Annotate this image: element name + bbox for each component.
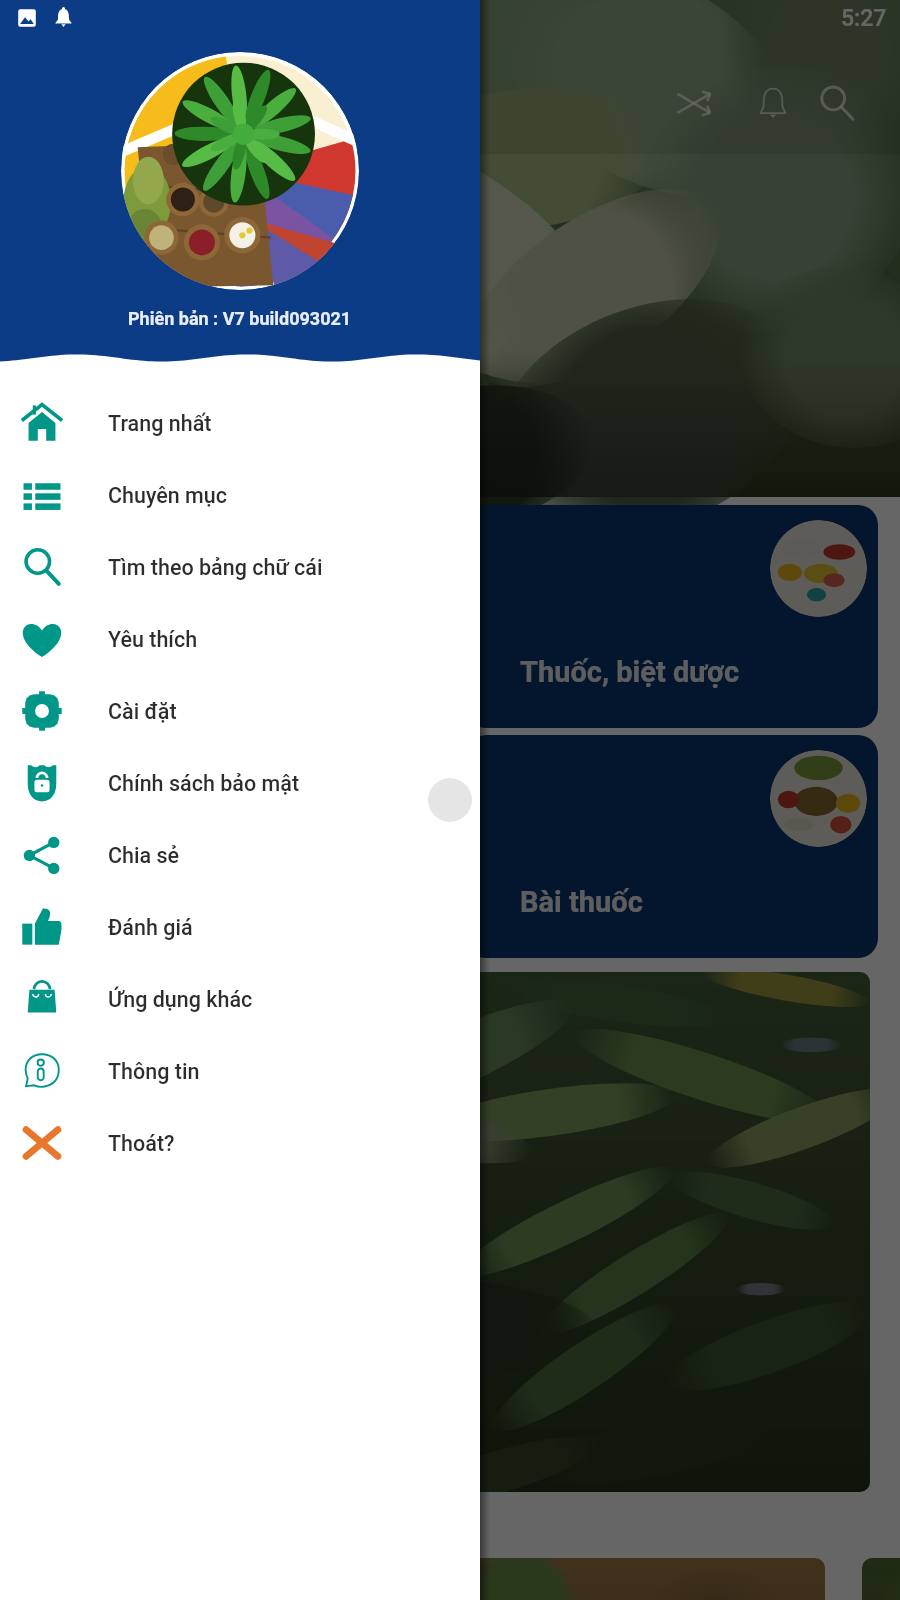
button[interactable]: Notifications <box>47 0 87 40</box>
staticText: Tìm theo bảng chữ cái <box>108 555 323 580</box>
button[interactable]: Tìm theo bảng chữ cái <box>0 531 480 603</box>
staticText: Huyệt đạo <box>76 885 211 919</box>
staticText: Thuốc, biệt dược <box>520 655 740 689</box>
staticText: Phiên bản : V7 build093021 <box>128 308 352 329</box>
staticText: Trang nhất <box>108 411 212 436</box>
staticText: 5:27 <box>841 5 887 32</box>
staticText: Thông tin <box>108 1059 200 1084</box>
staticText: Ứng dụng khác <box>108 987 253 1012</box>
staticText: Chính sách bảo mật <box>108 771 300 796</box>
staticText: Thoát? <box>108 1131 175 1156</box>
staticText: Chuyên mục <box>108 483 228 508</box>
button[interactable]: Cây thuốc <box>22 505 434 728</box>
button[interactable]: Shuffle <box>664 72 726 134</box>
button[interactable]: Chia sẻ <box>0 819 480 891</box>
button[interactable]: Cài đặt <box>0 675 480 747</box>
button[interactable]: Notifications <box>742 72 804 134</box>
button[interactable]: Ảnh thảo dược <box>862 1558 900 1600</box>
button[interactable]: Ứng dụng khác <box>0 963 480 1035</box>
staticText: Yêu thích <box>108 627 198 652</box>
button[interactable]: Trang nhất <box>0 387 480 459</box>
button[interactable]: Search <box>806 72 868 134</box>
button[interactable]: Gallery <box>7 0 47 40</box>
button[interactable]: Đánh giá <box>0 891 480 963</box>
button[interactable]: Bài thuốc <box>466 735 878 958</box>
button[interactable]: Cây thuốc nổi bật <box>30 972 870 1492</box>
button[interactable]: Thông tin <box>0 1035 480 1107</box>
button[interactable]: Huyệt đạo <box>22 735 434 958</box>
staticText: Bài thuốc <box>520 885 643 919</box>
button[interactable]: Chuyên mục <box>0 459 480 531</box>
staticText: Cài đặt <box>108 699 177 724</box>
button[interactable]: Thoát? <box>0 1107 480 1179</box>
button[interactable]: Yêu thích <box>0 603 480 675</box>
button[interactable]: Thuốc, biệt dược <box>466 505 878 728</box>
staticText: Chia sẻ <box>108 843 180 868</box>
staticText: Đánh giá <box>108 915 193 940</box>
button[interactable]: Chính sách bảo mật <box>0 747 480 819</box>
button[interactable]: Ảnh cây thuốc <box>30 1558 825 1600</box>
